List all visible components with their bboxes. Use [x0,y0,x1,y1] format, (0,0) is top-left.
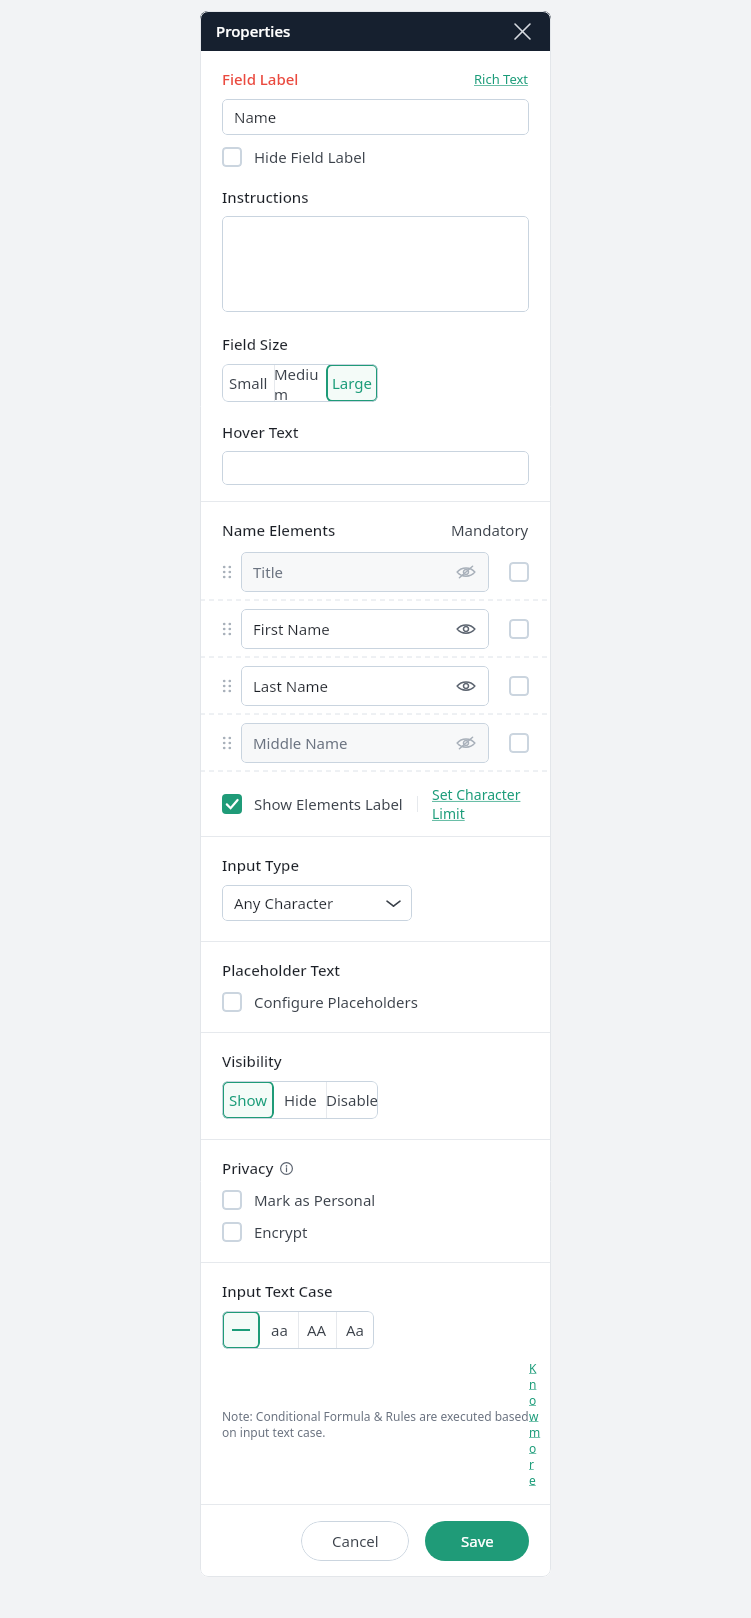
staticText: Medium [274,364,326,402]
button[interactable]: Mandatory Middle Name [509,733,529,753]
staticText: Encrypt [254,1222,308,1242]
staticText: Properties [216,21,509,41]
staticText: Placeholder Text [222,960,341,980]
button[interactable]: Mandatory Last Name [509,676,529,696]
staticText: Privacy [222,1158,274,1178]
staticText: Last Name [253,676,455,696]
button[interactable]: Large [326,364,378,402]
staticText: Cancel [332,1531,379,1551]
button[interactable] [222,216,529,312]
staticText: Rich Text [474,70,529,88]
staticText: Middle Name [253,733,455,753]
button[interactable]: Configure Placeholders [200,986,440,1018]
staticText: Field Label [222,69,474,89]
staticText: Large [332,373,373,393]
button[interactable]: Privacy info [280,1162,293,1175]
button[interactable]: Hide First Name [455,618,477,640]
button[interactable] [222,1311,260,1349]
button[interactable]: Mandatory First Name [509,619,529,639]
staticText: First Name [253,619,455,639]
button[interactable]: aa [260,1311,298,1349]
button[interactable]: Encrypt [200,1216,330,1248]
button[interactable]: Show Title [455,561,477,583]
button[interactable]: First Name [200,601,551,657]
staticText: Input Text Case [222,1281,333,1301]
staticText: Hide Field Label [254,147,366,167]
button[interactable]: Hide Last Name [455,675,477,697]
button[interactable]: Close [509,18,535,44]
button[interactable]: AA [298,1311,336,1349]
staticText: Note: Conditional Formula & Rules are ex… [222,1408,529,1440]
button[interactable]: Last Name [200,658,551,714]
button[interactable]: Mark as Personal [200,1184,398,1216]
button[interactable]: Title [200,544,551,600]
staticText: AA [307,1320,327,1340]
button[interactable]: Set Character Limit [432,785,529,823]
staticText: Mandatory [451,520,529,540]
button[interactable]: Hide [274,1081,326,1119]
staticText: Input Type [222,855,300,875]
button[interactable]: Save [425,1521,529,1561]
staticText: Set Character Limit [432,785,529,823]
button[interactable]: Show [222,1081,274,1119]
staticText: Hide [284,1090,317,1110]
staticText: Disable [326,1090,378,1110]
staticText: Aa [346,1320,365,1340]
button[interactable]: Small [222,364,274,402]
button[interactable]: Hide Field Label [222,147,366,167]
staticText: Visibility [222,1051,282,1071]
button[interactable] [222,451,529,485]
staticText: Field Size [222,334,288,354]
button[interactable]: Any Character [222,885,412,921]
button[interactable]: Rich Text [474,70,529,88]
staticText: Show [229,1090,268,1110]
staticText: Name [234,107,277,127]
button[interactable]: Mandatory Title [509,562,529,582]
staticText: Save [461,1531,494,1551]
button[interactable]: Disable [326,1081,378,1119]
button[interactable]: Middle Name [200,715,551,771]
staticText: Any Character [234,893,387,913]
button[interactable]: Aa [336,1311,374,1349]
staticText: Name Elements [222,520,451,540]
button[interactable]: Name [222,99,529,135]
staticText: Mark as Personal [254,1190,376,1210]
staticText: Instructions [222,187,309,207]
staticText: aa [271,1320,288,1340]
staticText: Configure Placeholders [254,992,418,1012]
staticText: Title [253,562,455,582]
button[interactable]: Show Elements Label [222,794,403,814]
staticText: Hover Text [222,422,299,442]
button[interactable]: Show Middle Name [455,732,477,754]
button[interactable]: Medium [274,364,326,402]
staticText: Show Elements Label [254,794,403,814]
staticText: Small [229,373,268,393]
button[interactable]: Cancel [301,1521,409,1561]
